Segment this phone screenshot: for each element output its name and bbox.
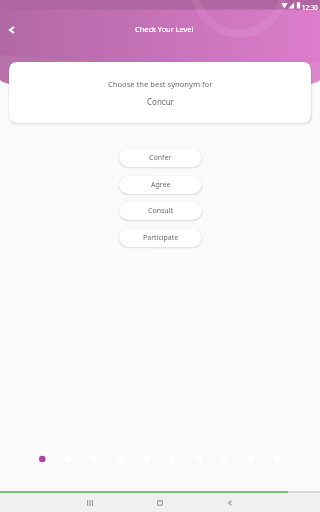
button[interactable]: Consult — [119, 202, 202, 220]
staticText: Check Your Level — [135, 24, 194, 34]
button[interactable]: Back — [195, 493, 265, 512]
button[interactable]: Home — [125, 493, 195, 512]
staticText: Confer — [149, 153, 172, 163]
staticText: Participate — [143, 233, 179, 243]
button[interactable]: Recent apps — [55, 493, 125, 512]
button[interactable]: Agree — [119, 176, 202, 194]
staticText: Agree — [151, 180, 171, 190]
staticText: Choose the best synonym for — [108, 79, 213, 89]
staticText: Concur — [147, 96, 174, 107]
button[interactable]: Confer — [119, 149, 202, 167]
button[interactable]: Participate — [119, 229, 202, 247]
button[interactable]: Back — [0, 13, 24, 47]
staticText: 12:30 — [302, 3, 318, 11]
staticText: Consult — [148, 206, 173, 216]
